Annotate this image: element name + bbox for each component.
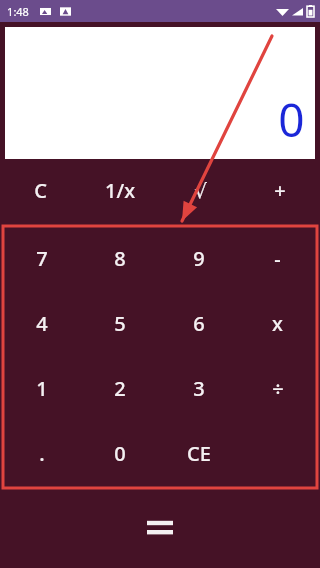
button[interactable]: . [3,421,81,486]
staticText: 2 [114,375,126,402]
staticText: 1:48 [7,4,29,19]
staticText: 8 [114,245,126,272]
button[interactable]: 7 [3,226,81,291]
staticText: 9 [193,245,205,272]
button[interactable]: √ [160,166,240,214]
staticText: 0 [278,88,305,151]
staticText: 7 [36,245,48,272]
staticText: 6 [193,310,205,337]
staticText: x [272,310,283,337]
button[interactable]: ÷ [238,356,317,421]
button[interactable] [238,421,317,486]
button[interactable]: x [238,291,317,356]
button[interactable]: 2 [81,356,159,421]
button[interactable]: 4 [3,291,81,356]
button[interactable]: - [238,226,317,291]
button[interactable]: 3 [159,356,238,421]
button[interactable]: 0 [81,421,159,486]
button[interactable]: Equals [0,488,320,568]
button[interactable]: 5 [81,291,159,356]
button[interactable]: 1/x [80,166,160,214]
button[interactable]: 6 [159,291,238,356]
button[interactable]: C [0,166,80,214]
staticText: 4 [36,310,48,337]
button[interactable]: CE [159,421,238,486]
staticText: 5 [114,310,126,337]
staticText: √ [194,179,207,202]
staticText: - [274,245,281,272]
staticText: . [39,440,45,467]
button[interactable]: 8 [81,226,159,291]
staticText: ÷ [272,375,284,402]
button[interactable]: 9 [159,226,238,291]
staticText: 0 [114,440,126,467]
button[interactable]: 1 [3,356,81,421]
staticText: 3 [193,375,205,402]
staticText: 1/x [105,177,135,204]
button[interactable]: + [240,166,320,214]
staticText: + [274,177,286,204]
button[interactable]: 0 [5,27,315,159]
staticText: 1 [36,375,48,402]
staticText: CE [187,440,211,467]
staticText: C [34,177,47,204]
